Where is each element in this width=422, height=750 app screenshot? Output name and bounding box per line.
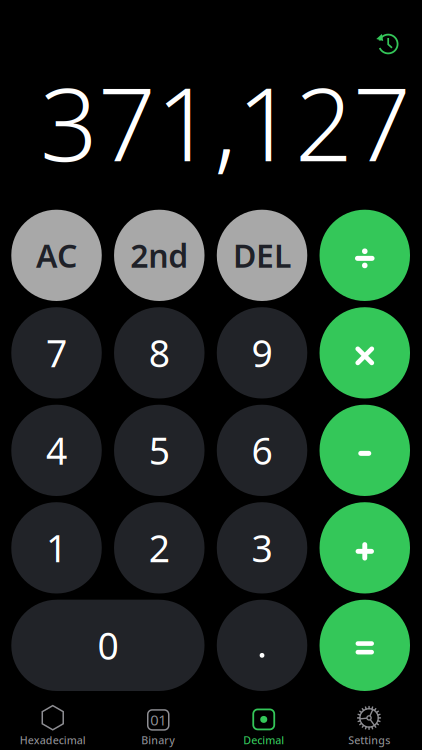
- button[interactable]: Decimal point: [217, 600, 307, 691]
- staticText: Decimal: [243, 733, 284, 747]
- staticText: 8: [149, 328, 170, 378]
- button[interactable]: Add: [320, 502, 410, 593]
- button[interactable]: 4: [11, 405, 102, 496]
- button[interactable]: Multiply: [320, 307, 410, 398]
- staticText: 5: [149, 426, 170, 475]
- staticText: 1: [46, 523, 67, 573]
- staticText: 2nd: [130, 234, 188, 277]
- staticText: AC: [36, 234, 77, 277]
- staticText: 01: [150, 710, 166, 730]
- button[interactable]: 2nd: [114, 210, 204, 301]
- button[interactable]: 6: [217, 405, 307, 496]
- staticText: 0: [97, 621, 118, 670]
- staticText: 7: [46, 328, 67, 378]
- button[interactable]: 7: [11, 307, 102, 398]
- staticText: 4: [46, 426, 67, 475]
- button[interactable]: Hexadecimal: [0, 702, 105, 750]
- button[interactable]: Divide: [320, 210, 410, 301]
- button[interactable]: Subtract: [320, 405, 410, 496]
- button[interactable]: 9: [217, 307, 307, 398]
- button[interactable]: 3: [217, 502, 307, 593]
- button[interactable]: Decimal: [211, 702, 316, 750]
- button[interactable]: Settings: [316, 702, 422, 750]
- staticText: 6: [251, 426, 272, 475]
- staticText: 9: [251, 328, 272, 378]
- button[interactable]: 01: [105, 702, 211, 750]
- staticText: Settings: [348, 733, 390, 747]
- button[interactable]: 5: [114, 405, 204, 496]
- staticText: Binary: [141, 733, 175, 747]
- button[interactable]: Equals: [320, 600, 410, 691]
- staticText: DEL: [233, 234, 291, 277]
- button[interactable]: History: [375, 32, 399, 54]
- button[interactable]: 1: [11, 502, 102, 593]
- button[interactable]: DEL: [217, 210, 307, 301]
- staticText: 371,127: [40, 55, 411, 189]
- button[interactable]: 2: [114, 502, 204, 593]
- staticText: 2: [149, 523, 170, 573]
- button[interactable]: AC: [11, 210, 102, 301]
- button[interactable]: 8: [114, 307, 204, 398]
- staticText: Hexadecimal: [20, 733, 86, 747]
- button[interactable]: 0: [11, 600, 204, 691]
- staticText: 3: [251, 523, 272, 573]
